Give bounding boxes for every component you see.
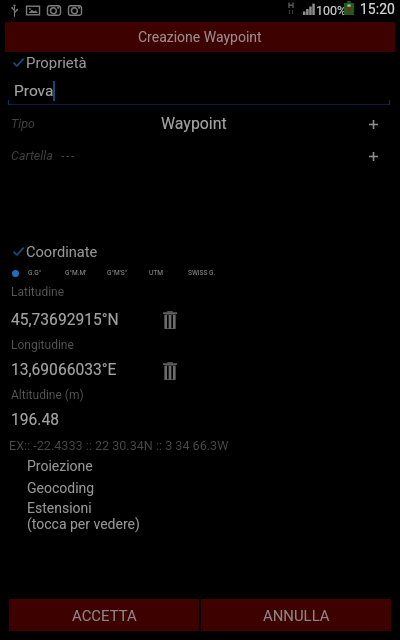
button[interactable]: Aggiungi <box>360 112 386 137</box>
staticText: Waypoint <box>161 114 227 133</box>
button[interactable]: Aggiungi <box>360 144 386 169</box>
staticText: Longitudine <box>11 338 74 352</box>
staticText: 100% <box>316 3 347 18</box>
staticText: UTM <box>149 269 163 277</box>
button[interactable]: ANNULLA <box>201 599 391 631</box>
staticText: Proprietà <box>26 54 87 70</box>
staticText: 13,69066033°E <box>11 361 117 379</box>
staticText: Proiezione <box>27 458 93 474</box>
button[interactable]: UTM <box>149 267 163 279</box>
button[interactable]: G°M'S" <box>107 267 127 279</box>
button[interactable]: ACCETTA <box>9 599 199 631</box>
staticText: Altitudine (m) <box>11 388 84 402</box>
staticText: Creazione Waypoint <box>138 29 262 45</box>
button[interactable]: Estensioni <box>27 500 140 532</box>
staticText: Prova <box>14 82 54 100</box>
staticText: EX:: -22.4333 :: 22 30.34N :: 3 34 66.3W <box>9 438 229 452</box>
staticText: 15:20 <box>360 1 395 17</box>
staticText: ANNULLA <box>263 607 330 624</box>
button[interactable]: Cartella <box>0 143 400 168</box>
staticText: Estensioni <box>27 500 92 516</box>
button[interactable]: SWISS G. <box>188 267 216 279</box>
staticText: ACCETTA <box>72 607 137 624</box>
staticText: SWISS G. <box>188 269 216 277</box>
staticText: Latitudine <box>11 285 65 299</box>
staticText: Tipo <box>11 116 35 131</box>
staticText: G.G° <box>28 269 42 277</box>
button[interactable]: G.G° <box>28 267 42 279</box>
button[interactable]: Creazione Waypoint <box>5 22 395 52</box>
staticText: 45,73692915°N <box>11 311 119 329</box>
button[interactable]: Elimina <box>161 361 179 381</box>
staticText: (tocca per vedere) <box>27 516 140 532</box>
staticText: Cartella <box>11 148 53 163</box>
staticText: G°M.M' <box>65 269 87 277</box>
button[interactable]: Tipo <box>0 111 400 136</box>
staticText: 196.48 <box>11 411 59 429</box>
staticText: Coordinate <box>26 243 98 259</box>
button[interactable]: Proiezione <box>27 457 93 475</box>
staticText: --- <box>61 148 76 163</box>
button[interactable]: Elimina <box>161 310 179 330</box>
staticText: G°M'S" <box>107 269 127 277</box>
button[interactable]: Geocoding <box>27 479 95 497</box>
staticText: Geocoding <box>27 480 95 496</box>
button[interactable]: G°M.M' <box>65 267 87 279</box>
